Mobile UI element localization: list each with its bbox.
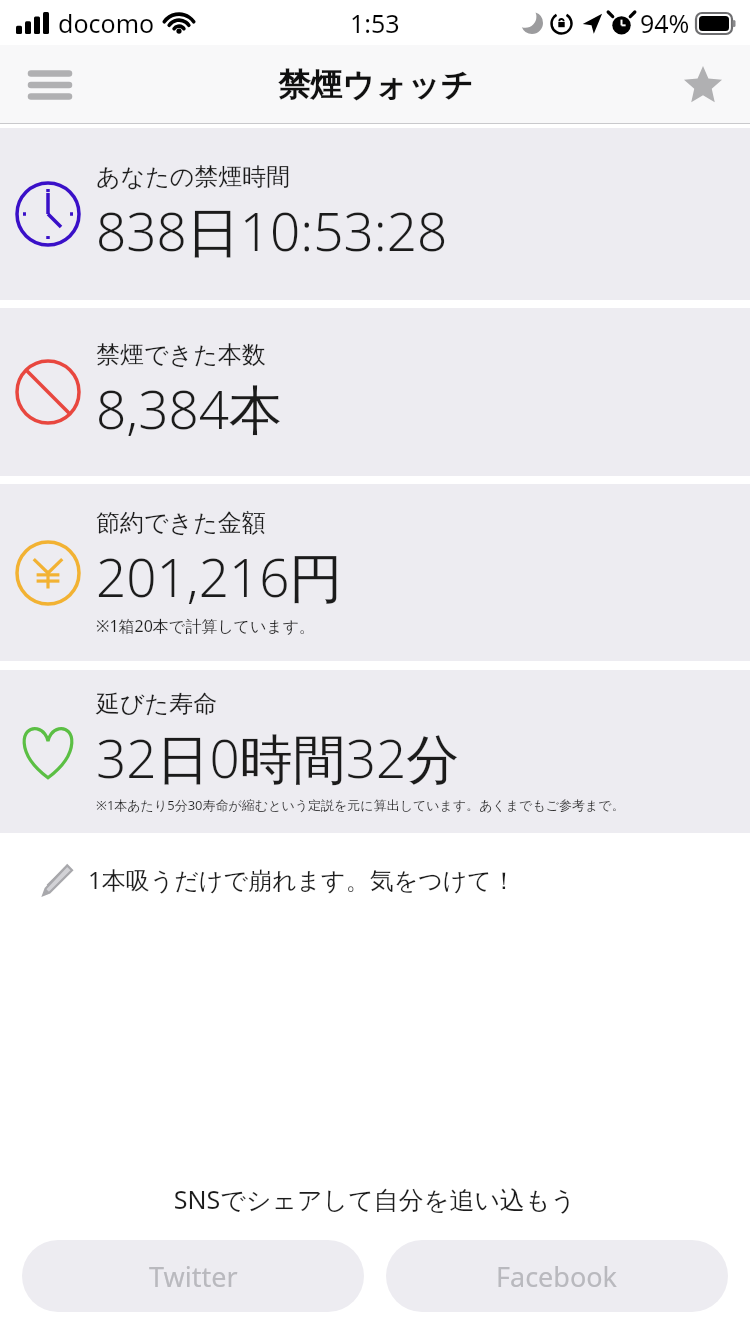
staticText: 1:53	[350, 6, 400, 40]
other: Time	[14, 180, 82, 248]
staticText: ※1本あたり5分30寿命が縮むという定説を元に算出しています。あくまでもご参考ま…	[96, 796, 625, 814]
staticText: 禁煙ウォッチ	[278, 65, 473, 105]
button[interactable]: Facebook	[386, 1240, 728, 1312]
button[interactable]: 1本吸うだけで崩れます。気をつけて！	[0, 833, 750, 925]
staticText: 禁煙できた本数	[96, 340, 266, 370]
button[interactable]: Cigarettes avoided	[0, 308, 750, 476]
staticText: あなたの禁煙時間	[96, 162, 291, 192]
staticText: 201,216円	[96, 540, 343, 612]
button[interactable]: Favorite	[670, 52, 736, 118]
staticText: Facebook	[496, 1258, 618, 1295]
button[interactable]: Time	[0, 128, 750, 300]
other: Money saved	[14, 539, 82, 607]
staticText: 94%	[640, 6, 690, 40]
button[interactable]: Menu	[14, 49, 86, 121]
button[interactable]: Life extended	[0, 670, 750, 833]
staticText: 32日0時間32分	[96, 721, 460, 793]
other: Cigarettes avoided	[14, 358, 82, 426]
button[interactable]: Money saved	[0, 484, 750, 661]
staticText: 838日10:53:28	[96, 194, 448, 266]
staticText: Twitter	[149, 1258, 238, 1295]
staticText: 延びた寿命	[96, 689, 218, 719]
staticText: ※1箱20本で計算しています。	[96, 615, 316, 637]
button[interactable]: Twitter	[22, 1240, 364, 1312]
staticText: docomo	[58, 6, 155, 40]
staticText: SNSでシェアして自分を追い込もう	[0, 1182, 750, 1216]
staticText: 節約できた金額	[96, 508, 266, 538]
staticText: 1本吸うだけで崩れます。気をつけて！	[88, 863, 516, 896]
staticText: 8,384本	[96, 372, 282, 444]
other: Life extended	[14, 718, 82, 786]
